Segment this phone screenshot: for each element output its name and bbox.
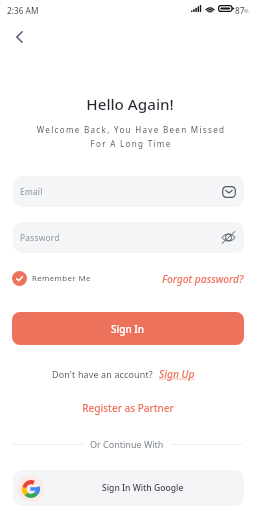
staticText: Don't have an account? bbox=[52, 368, 153, 380]
button[interactable]: Sign Up bbox=[159, 367, 195, 381]
button[interactable]: Register as Partner bbox=[0, 401, 256, 415]
staticText: Welcome Back, You Have Been Missed For A… bbox=[3, 124, 256, 149]
button[interactable]: Password bbox=[13, 222, 244, 253]
button[interactable]: Back bbox=[7, 25, 31, 49]
staticText: Hello Again! bbox=[2, 94, 256, 115]
button[interactable]: Email bbox=[13, 176, 244, 207]
button[interactable]: Sign In bbox=[12, 312, 244, 345]
staticText: 2:36 AM bbox=[7, 5, 39, 16]
staticText: Email bbox=[20, 186, 43, 197]
staticText: Sign In bbox=[111, 322, 145, 336]
staticText: Or Continue With bbox=[90, 438, 164, 450]
button[interactable]: Remember Me bbox=[12, 271, 91, 286]
staticText: % bbox=[244, 7, 249, 14]
staticText: 87 bbox=[235, 5, 245, 16]
staticText: Password bbox=[20, 232, 60, 243]
button[interactable]: Sign In With Google bbox=[13, 470, 244, 506]
staticText: Sign In With Google bbox=[102, 482, 184, 494]
staticText: Remember Me bbox=[32, 273, 91, 284]
button[interactable]: Forgot password? bbox=[162, 272, 244, 286]
